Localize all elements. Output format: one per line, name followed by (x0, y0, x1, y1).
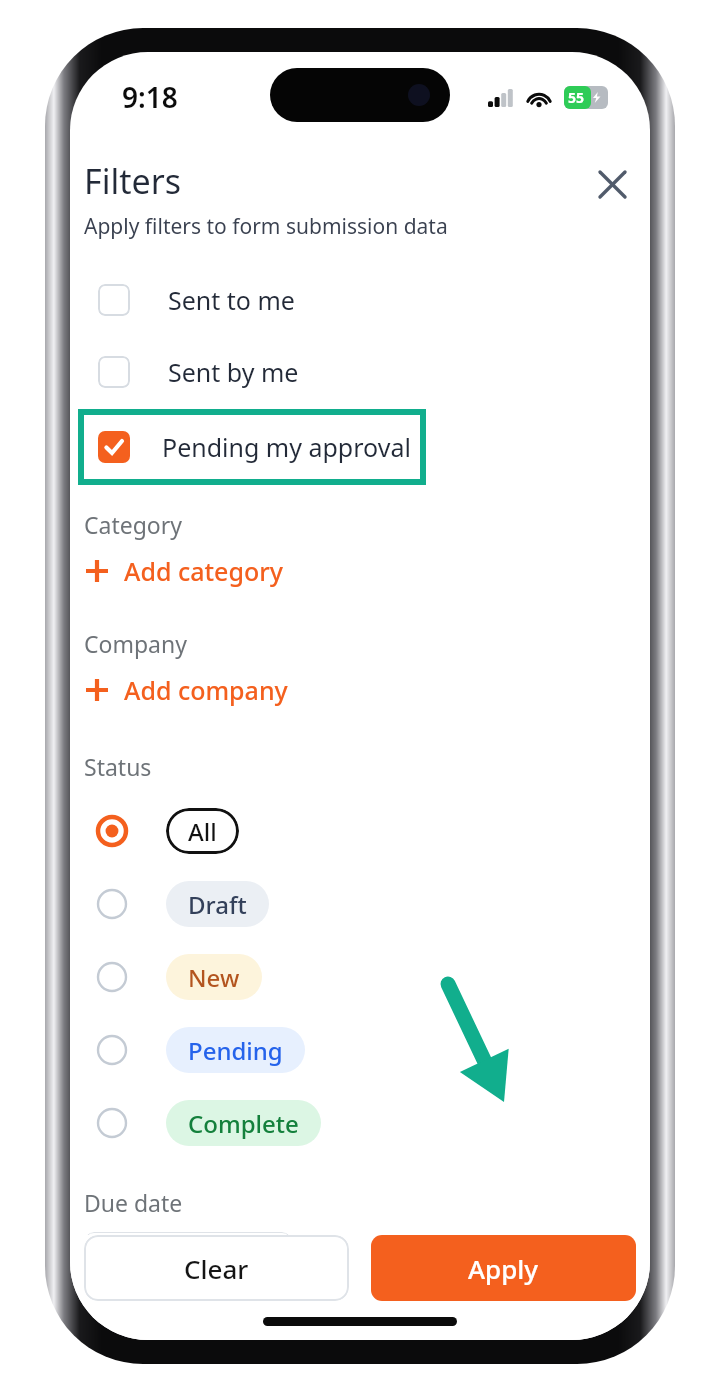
button[interactable]: Clear (84, 1235, 349, 1301)
button[interactable]: Add company (84, 667, 288, 713)
button[interactable]: Close (588, 160, 636, 208)
staticText: All (188, 815, 217, 848)
staticText: Filters (84, 158, 181, 204)
staticText: Sent to me (168, 283, 295, 317)
staticText: 55 (568, 88, 585, 107)
staticText: Status (84, 751, 152, 782)
staticText: Pending (188, 1034, 283, 1067)
button[interactable]: New (84, 940, 650, 1013)
button[interactable]: All (84, 794, 650, 867)
staticText: Apply filters to form submission data (84, 212, 448, 241)
button[interactable]: Apply (371, 1235, 636, 1301)
button[interactable]: Sent by me (84, 349, 636, 395)
staticText: Due date (84, 1187, 183, 1218)
staticText: Company (84, 628, 187, 659)
button[interactable]: Pending my approval (84, 415, 420, 479)
staticText: Add company (124, 673, 288, 707)
button[interactable]: Draft (84, 867, 650, 940)
staticText: 9:18 (122, 78, 178, 116)
button[interactable]: Select a date (84, 1232, 292, 1302)
staticText: Sent by me (168, 355, 299, 389)
staticText: Pending my approval (162, 430, 411, 464)
staticText: Clear (184, 1251, 249, 1286)
button[interactable]: Sent to me (84, 277, 636, 323)
staticText: New (188, 961, 240, 994)
staticText: Draft (188, 888, 247, 921)
button[interactable]: Pending (84, 1013, 650, 1086)
button[interactable]: Add category (84, 548, 283, 594)
staticText: Apply (468, 1251, 539, 1286)
staticText: Add category (124, 554, 283, 588)
button[interactable]: Complete (84, 1086, 650, 1159)
staticText: Category (84, 509, 183, 540)
staticText: Select a date (142, 1260, 262, 1287)
staticText: Complete (188, 1107, 299, 1140)
